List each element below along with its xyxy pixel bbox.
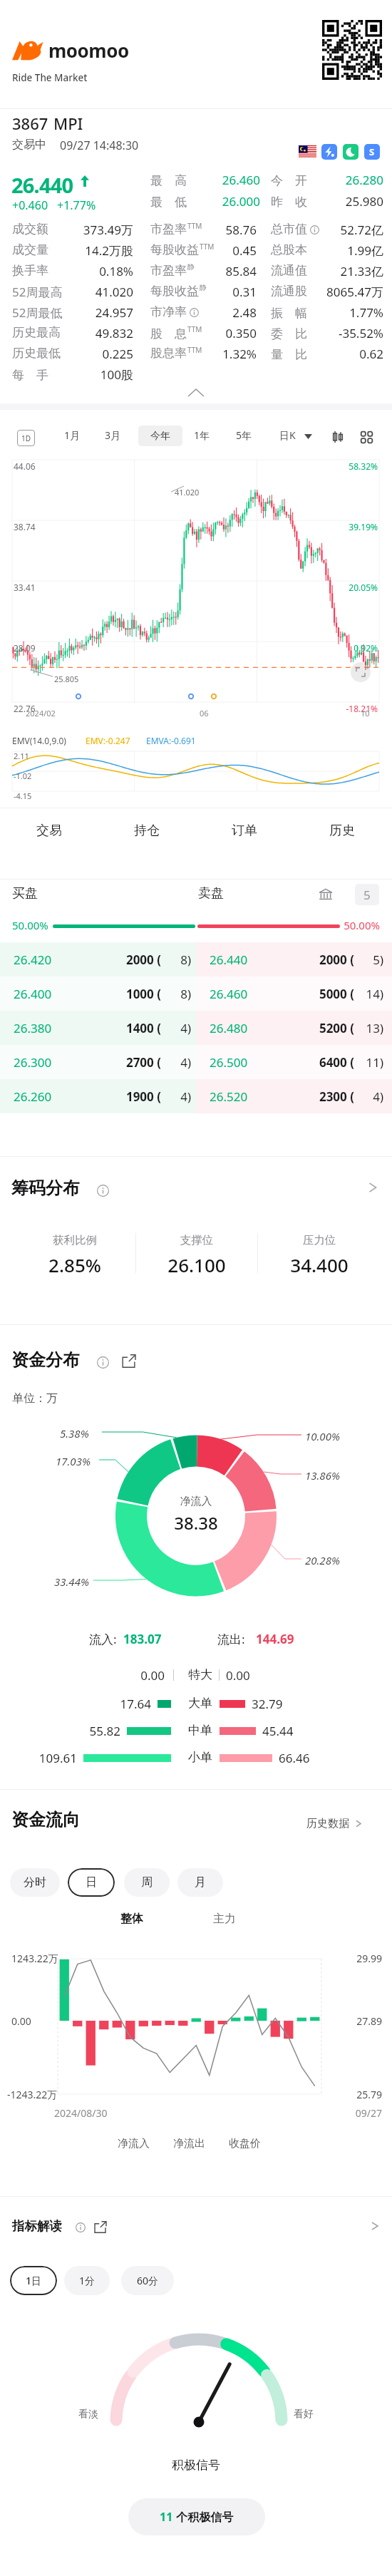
staticText: 2024/08/30 [54, 2106, 108, 2120]
staticText: 历史 [329, 823, 355, 839]
staticText: 量 比 [271, 346, 307, 362]
staticText: 流通值 [271, 263, 307, 278]
staticText: 60分 [137, 2274, 159, 2287]
staticText: S [369, 145, 375, 158]
button[interactable] [196, 1079, 392, 1113]
staticText: 1.77% [271, 304, 383, 321]
staticText: 历史最低 [12, 346, 61, 361]
button[interactable] [196, 942, 392, 977]
button[interactable]: 60分 [121, 2266, 174, 2295]
button[interactable]: 1日 [10, 2266, 57, 2295]
staticText: 4) [163, 1088, 191, 1105]
staticText: 振 幅 [271, 304, 307, 321]
button[interactable] [196, 1045, 392, 1079]
button[interactable]: 今年 [138, 426, 182, 446]
staticText: 主力 [196, 1912, 253, 1926]
button[interactable]: 日 [68, 1868, 115, 1897]
staticText: 1年 [194, 428, 210, 442]
staticText: 26.520 [210, 1088, 248, 1105]
staticText: 41.020 [12, 284, 133, 300]
staticText: 26.460 [150, 172, 260, 188]
staticText: TTM [187, 221, 202, 231]
staticText: 市盈率 [150, 263, 187, 278]
staticText: 183.07 [123, 1631, 162, 1647]
staticText: 0.18% [12, 263, 133, 279]
staticText: 09/27 [271, 2106, 382, 2120]
staticText: 26.280 [271, 172, 383, 188]
staticText: 最 低 [150, 193, 187, 210]
button[interactable]: Market Malaysia [299, 145, 316, 158]
staticText: 5 [363, 887, 371, 903]
button[interactable]: 1D [17, 430, 35, 446]
button[interactable]: Share [94, 2221, 106, 2233]
button[interactable]: Brokers [316, 885, 335, 904]
staticText: 净流入 [118, 2137, 150, 2150]
button[interactable]: Fullscreen [351, 662, 371, 682]
staticText: 2000 ( [271, 952, 354, 968]
staticText: 特大 [179, 1667, 222, 1682]
staticText: 成交额 [12, 222, 48, 237]
staticText: 2000 ( [78, 952, 161, 968]
button[interactable]: 11 [128, 2498, 265, 2535]
staticText: 109.61 [29, 1750, 77, 1766]
staticText: 0.00 [11, 2014, 31, 2028]
button[interactable]: Collapse [188, 388, 204, 396]
staticText: 25.805 [54, 674, 79, 684]
staticText: 44.06 [14, 460, 36, 472]
button[interactable] [0, 1079, 196, 1113]
button[interactable]: 历史数据 [306, 1815, 363, 1832]
staticText: 支撑位 [133, 1233, 261, 1247]
staticText: 2300 ( [271, 1088, 354, 1105]
button[interactable] [0, 1011, 196, 1045]
staticText: -18.21% [264, 703, 378, 714]
button[interactable]: Share [122, 1354, 135, 1368]
button[interactable]: Chart style [329, 428, 346, 445]
button[interactable]: 历史 [293, 808, 391, 852]
staticText: 1.99亿 [271, 242, 383, 259]
staticText: 52周最低 [12, 304, 63, 321]
button[interactable]: More [369, 2220, 381, 2232]
staticText: 净流入 [153, 1495, 239, 1508]
button[interactable]: Indicators [358, 428, 375, 445]
staticText: 39.19% [264, 521, 378, 532]
staticText: 净流出 [173, 2137, 205, 2150]
button[interactable] [0, 977, 196, 1011]
staticText: 4) [354, 1088, 383, 1105]
staticText: 26.100 [133, 1252, 261, 1277]
staticText: 0.225 [12, 346, 133, 362]
staticText: 26.500 [210, 1054, 248, 1071]
button[interactable]: 交易 [0, 808, 98, 852]
staticText: 38.74 [14, 521, 36, 532]
staticText: 20.28% [305, 1553, 340, 1567]
staticText: 66.46 [279, 1750, 310, 1766]
button[interactable] [196, 1011, 392, 1045]
staticText: 3867 [12, 113, 48, 134]
button[interactable]: 1分 [64, 2266, 110, 2295]
button[interactable]: 持仓 [98, 808, 195, 852]
staticText: 总市值 [271, 222, 307, 237]
staticText: 45.44 [262, 1723, 294, 1739]
staticText: 21.33亿 [271, 263, 383, 279]
button[interactable]: 周 [124, 1868, 170, 1897]
button[interactable]: More [366, 1180, 379, 1195]
staticText: 26.440 [11, 171, 73, 199]
button[interactable] [0, 942, 196, 977]
button[interactable]: 5 [355, 884, 379, 905]
staticText: 26.420 [14, 952, 52, 968]
staticText: 1分 [79, 2274, 96, 2287]
staticText: 50.00% [299, 918, 380, 932]
staticText: 11) [354, 1054, 383, 1071]
button[interactable]: Night trading [343, 144, 359, 160]
staticText: 资金分布 [11, 1349, 80, 1371]
staticText: 2700 ( [78, 1054, 161, 1071]
button[interactable]: Currency [364, 144, 380, 160]
button[interactable]: 月 [177, 1868, 223, 1897]
button[interactable]: Level 2 [321, 144, 337, 160]
staticText: 26.400 [14, 986, 52, 1002]
button[interactable] [0, 1045, 196, 1079]
staticText: 55.82 [29, 1723, 120, 1739]
button[interactable] [196, 977, 392, 1011]
button[interactable]: 订单 [195, 808, 293, 852]
button[interactable]: 分时 [10, 1868, 60, 1897]
staticText: 32.79 [252, 1696, 283, 1712]
